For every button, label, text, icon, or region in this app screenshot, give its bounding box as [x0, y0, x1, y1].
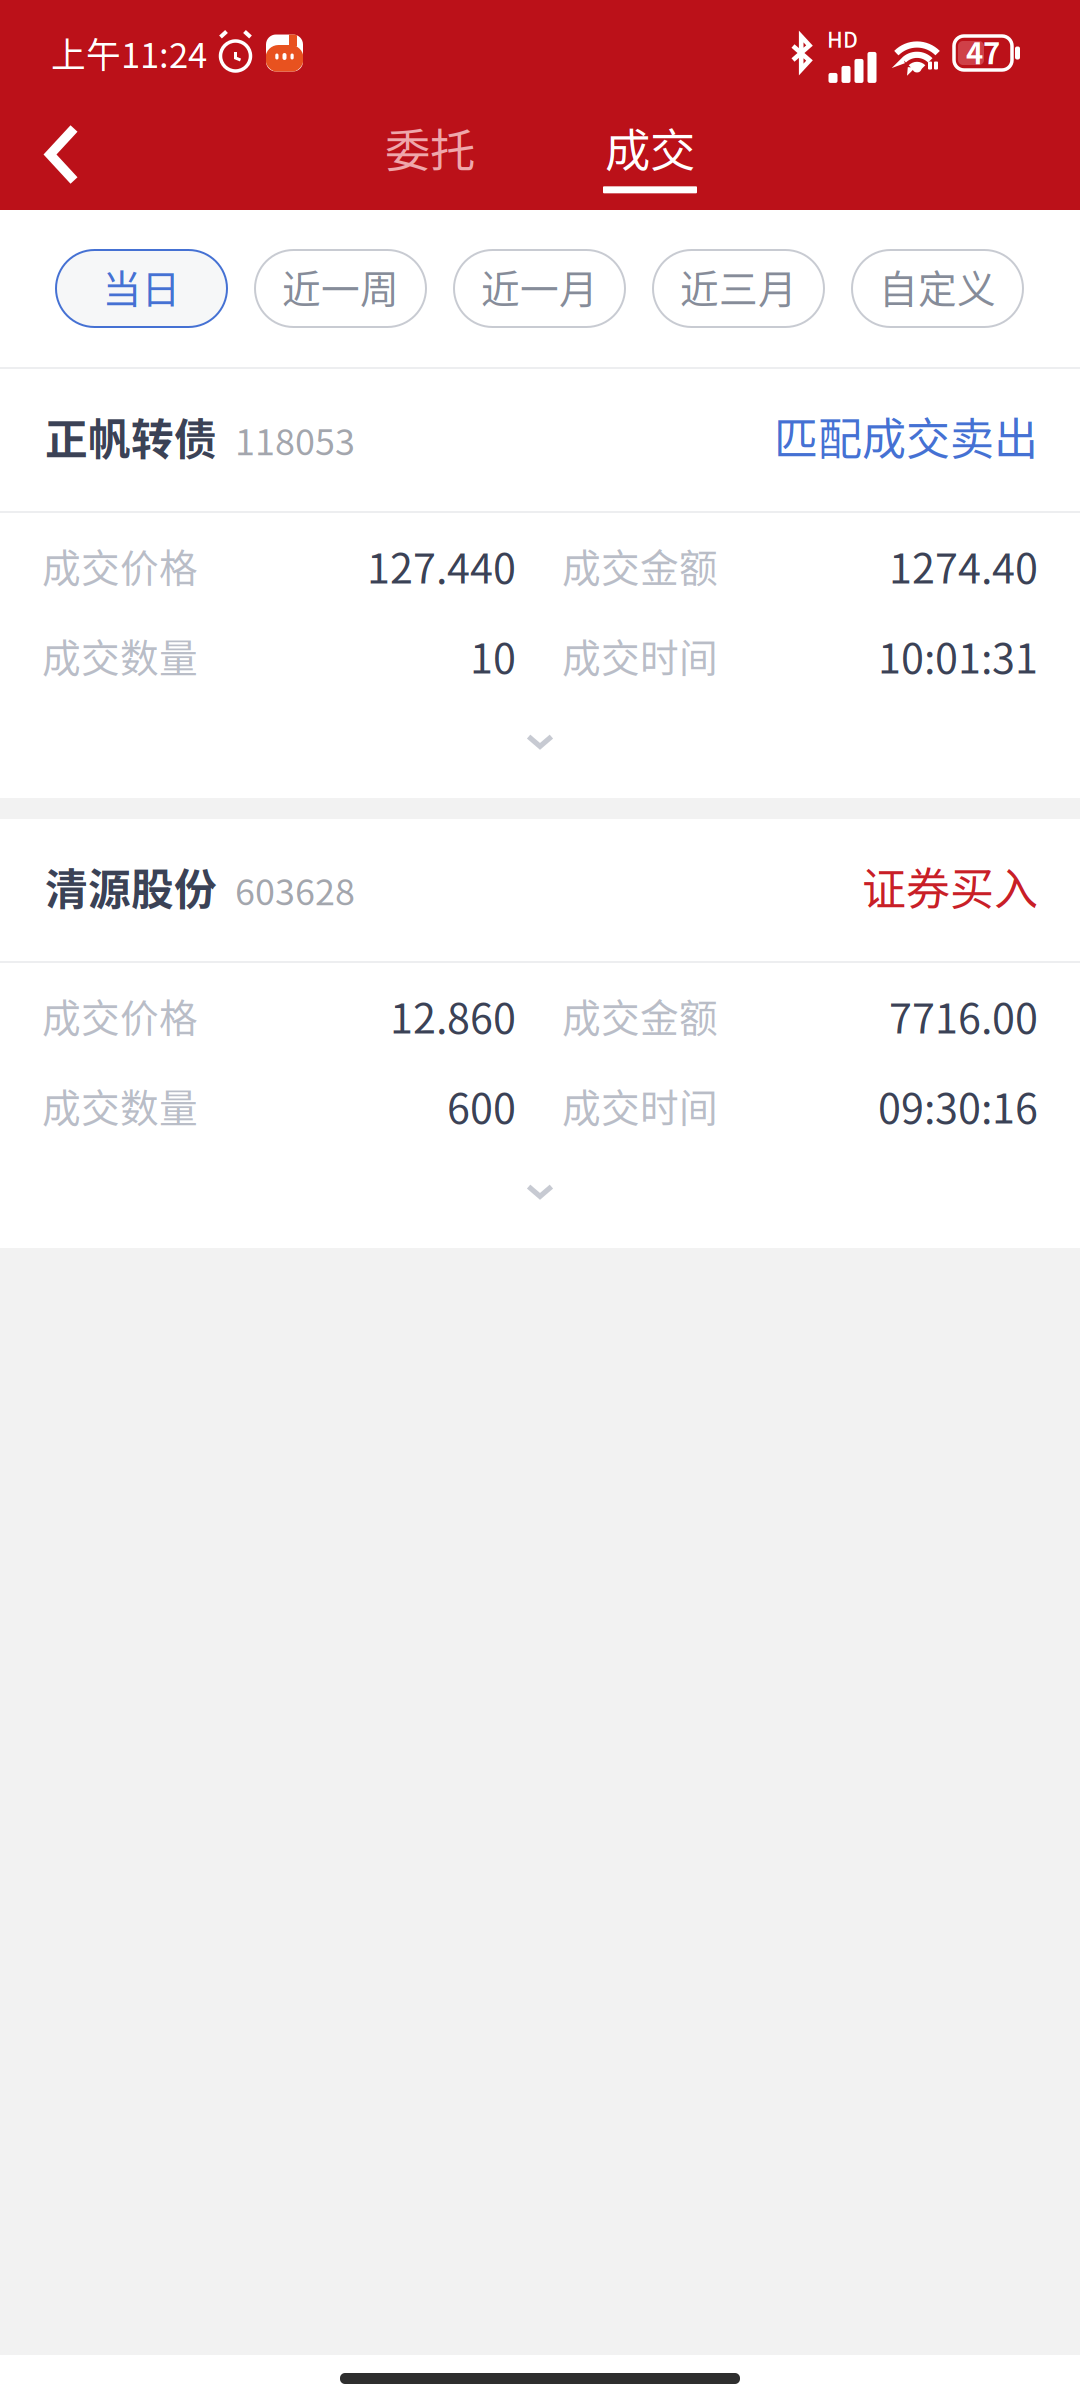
staticText: 匹配成交卖出	[774, 404, 1038, 468]
staticText: 118053	[235, 413, 355, 465]
staticText: 603628	[235, 863, 355, 915]
button[interactable]: 返回	[0, 106, 124, 210]
staticText: 近三月	[680, 258, 797, 314]
staticText: 47	[966, 30, 1000, 73]
staticText: 09:30:16	[878, 1076, 1038, 1135]
staticText: 近一周	[282, 258, 399, 314]
button[interactable]: 委托	[350, 106, 510, 210]
staticText: HD	[827, 23, 858, 54]
staticText: 成交数量	[42, 1077, 198, 1133]
staticText: 10:01:31	[878, 626, 1038, 685]
staticText: 正帆转债	[45, 406, 217, 467]
staticText: 当日	[102, 258, 180, 314]
staticText: 10	[470, 626, 516, 685]
staticText: 成交	[605, 115, 695, 180]
staticText: 成交时间	[562, 627, 718, 683]
staticText: 清源股份	[45, 856, 217, 917]
staticText: 127.440	[367, 536, 516, 595]
button[interactable]: 近一月	[454, 250, 625, 327]
staticText: 成交金额	[562, 537, 718, 593]
staticText: 1274.40	[889, 536, 1038, 595]
staticText: 成交价格	[42, 987, 198, 1043]
staticText: 成交时间	[562, 1077, 718, 1133]
staticText: 上午11:24	[51, 28, 207, 78]
staticText: 成交数量	[42, 627, 198, 683]
staticText: 成交金额	[562, 987, 718, 1043]
staticText: 12.860	[390, 986, 516, 1045]
button[interactable]: 当日	[56, 250, 227, 327]
button[interactable]: 成交	[570, 106, 730, 210]
staticText: 7716.00	[889, 986, 1038, 1045]
staticText: 证券买入	[862, 854, 1038, 918]
staticText: 委托	[385, 115, 475, 180]
staticText: 自定义	[879, 258, 996, 314]
staticText: 近一月	[481, 258, 598, 314]
staticText: 600	[447, 1076, 516, 1135]
button[interactable]: 近一周	[255, 250, 426, 327]
button[interactable]: 自定义	[852, 250, 1023, 327]
staticText: 成交价格	[42, 537, 198, 593]
button[interactable]: 近三月	[653, 250, 824, 327]
